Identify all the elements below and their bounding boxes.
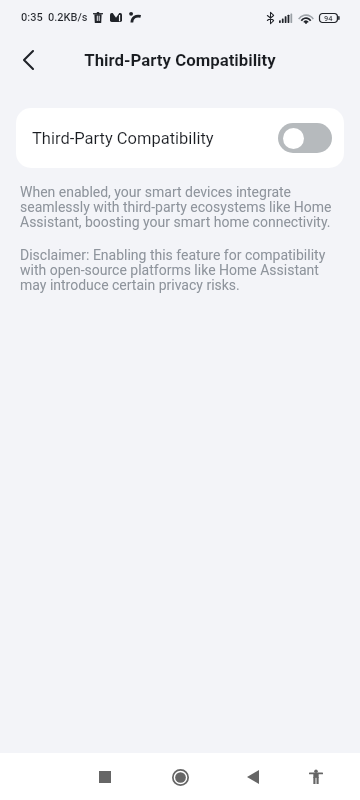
staticText: 0:35 [21, 11, 43, 24]
button[interactable]: Toggle Third-Party Compatibility [278, 123, 332, 153]
button[interactable]: Home [163, 760, 197, 794]
button[interactable]: Back [8, 40, 48, 80]
staticText: Disclaimer: Enabling this feature for co… [20, 248, 346, 293]
button[interactable]: Third-Party Compatibility [16, 108, 344, 168]
staticText: When enabled, your smart devices integra… [20, 185, 346, 230]
button[interactable]: Back [236, 760, 270, 794]
button[interactable]: Accessibility [299, 760, 333, 794]
staticText: Third-Party Compatibility [84, 50, 276, 70]
staticText: Third-Party Compatibility [32, 129, 214, 148]
button[interactable]: Recents [88, 760, 122, 794]
staticText: 0.2KB/s [48, 11, 88, 24]
staticText: 94 [324, 14, 333, 23]
